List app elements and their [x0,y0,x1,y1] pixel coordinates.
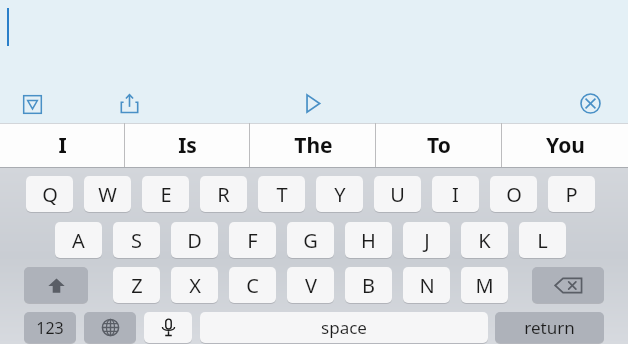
staticText: O [506,181,522,208]
button[interactable]: return [495,312,604,343]
button[interactable]: The [250,123,376,168]
button[interactable]: T [258,176,305,212]
staticText: L [537,227,548,254]
button[interactable]: W [84,176,131,212]
staticText: D [187,227,202,254]
staticText: 123 [36,317,64,339]
staticText: K [478,227,491,254]
staticText: W [98,181,117,208]
staticText: S [131,227,142,254]
button[interactable]: To [376,123,502,168]
button[interactable]: D [171,222,218,258]
button[interactable]: Save [17,89,47,119]
staticText: You [546,131,585,160]
button[interactable]: Z [113,267,160,303]
button[interactable]: Share [114,88,144,118]
staticText: E [160,181,172,208]
staticText: Z [131,272,143,299]
button[interactable]: V [287,267,334,303]
staticText: J [424,227,430,254]
staticText: F [247,227,258,254]
button[interactable]: I [0,123,125,168]
staticText: I [58,131,67,160]
staticText: V [305,272,317,299]
button[interactable]: U [374,176,421,212]
button[interactable]: Change keyboard [84,312,136,343]
button[interactable]: P [548,176,595,212]
staticText: space [321,316,367,339]
button[interactable]: J [403,222,450,258]
button[interactable]: N [403,267,450,303]
button[interactable]: X [171,267,218,303]
staticText: Y [334,181,346,208]
staticText: Q [42,181,58,208]
staticText: T [276,181,288,208]
button[interactable]: M [461,267,508,303]
staticText: H [361,227,376,254]
button[interactable]: F [229,222,276,258]
staticText: The [294,131,333,160]
button[interactable]: Y [316,176,363,212]
button[interactable]: space [200,312,488,343]
staticText: To [427,131,451,160]
button[interactable]: E [142,176,189,212]
button[interactable]: Voice input [144,312,192,343]
button[interactable]: R [200,176,247,212]
staticText: M [475,272,494,299]
staticText: return [524,316,575,339]
button[interactable]: Close [575,88,605,118]
staticText: U [390,181,405,208]
button[interactable]: Shift [24,267,88,303]
button[interactable]: G [287,222,334,258]
staticText: G [303,227,318,254]
staticText: X [189,272,201,299]
button[interactable]: S [113,222,160,258]
staticText: Is [178,131,197,160]
staticText: A [72,227,85,254]
staticText: N [419,272,435,299]
staticText: B [362,272,375,299]
staticText: P [565,181,578,208]
button[interactable]: O [490,176,537,212]
button[interactable]: B [345,267,392,303]
button[interactable]: H [345,222,392,258]
button[interactable]: I [432,176,479,212]
button[interactable]: Backspace [532,267,604,303]
button[interactable]: L [519,222,566,258]
button[interactable]: You [502,123,628,168]
button[interactable]: 123 [24,312,76,343]
button[interactable]: K [461,222,508,258]
button[interactable]: Play [297,88,327,118]
button[interactable]: Q [26,176,73,212]
button[interactable]: A [55,222,102,258]
staticText: C [246,272,259,299]
staticText: I [452,181,459,208]
button[interactable]: C [229,267,276,303]
staticText: R [217,181,230,208]
button[interactable]: Is [125,123,250,168]
